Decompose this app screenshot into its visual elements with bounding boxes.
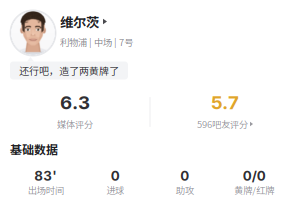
button[interactable]: 0 [80,170,150,194]
image [10,10,56,56]
staticText: 还行吧，造了两黄牌了 [19,63,119,78]
staticText: 基础数据 [10,140,58,158]
button[interactable]: 5.7 [150,95,300,128]
staticText: 利物浦 | 中场 | 7号 [60,35,133,49]
button[interactable]: 83' [11,170,80,194]
button[interactable]: 维尔茨 [0,8,300,54]
button[interactable]: 0 [150,170,219,194]
button[interactable]: 0/0 [219,170,289,194]
staticText: 出场时间 [28,183,64,197]
staticText: 0/0 [243,168,266,184]
staticText: 83' [34,168,57,184]
staticText: 媒体评分 [57,117,93,131]
staticText: 助攻 [176,183,194,197]
button[interactable]: 6.3 [0,95,150,128]
staticText: 进球 [106,183,124,197]
staticText: 黄牌/红牌 [234,183,274,197]
staticText: 596吧友评分 [197,117,248,131]
staticText: 维尔茨 [60,12,99,31]
staticText: 5.7 [211,91,239,114]
staticText: 0 [180,168,189,184]
staticText: 6.3 [60,91,90,114]
staticText: 0 [111,168,120,184]
